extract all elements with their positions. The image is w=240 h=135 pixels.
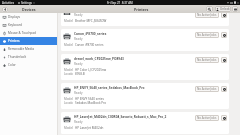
button[interactable]: Keyboard bbox=[0, 21, 57, 29]
staticText: Canon iP8700 series bbox=[75, 43, 104, 47]
button[interactable]: Back bbox=[2, 7, 8, 12]
staticText: No Active Jobs bbox=[197, 58, 217, 62]
staticText: Ready bbox=[74, 13, 83, 17]
button[interactable]: Color bbox=[0, 61, 57, 69]
button[interactable]: Printer settings bbox=[221, 86, 227, 92]
other: Battery bbox=[234, 1, 236, 4]
staticText: Model bbox=[64, 97, 73, 101]
button[interactable]: Removable Media bbox=[0, 45, 57, 53]
staticText: HP LaserJet M402dn bbox=[75, 126, 104, 130]
staticText: No Active Jobs bbox=[197, 33, 217, 37]
staticText: Activities bbox=[2, 1, 15, 5]
button[interactable]: Action bbox=[206, 6, 213, 12]
button[interactable]: No Active Jobs bbox=[195, 115, 219, 121]
staticText: Thunderbolt bbox=[8, 55, 27, 59]
button[interactable]: No Active Jobs bbox=[195, 32, 219, 38]
staticText: Settings bbox=[21, 1, 32, 5]
staticText: Devices bbox=[22, 7, 36, 12]
other: Search bbox=[208, 8, 211, 11]
staticText: Model bbox=[64, 126, 73, 130]
other: Network bbox=[227, 2, 229, 4]
staticText: Location bbox=[64, 72, 73, 76]
button[interactable]: Activities bbox=[2, 1, 15, 5]
button[interactable]: drexel_work_CP2025nw_PO8943 bbox=[61, 54, 229, 80]
staticText: Model bbox=[64, 43, 73, 47]
button[interactable]: Displays bbox=[0, 13, 57, 21]
button[interactable]: Printer settings bbox=[221, 115, 227, 121]
staticText: Model bbox=[64, 68, 73, 72]
staticText: Printers bbox=[134, 7, 149, 12]
button[interactable]: Canon_iP8700_series bbox=[61, 29, 229, 51]
button[interactable]: HP_LaserJet_M402dn_C00R04_Savario_Robust… bbox=[61, 112, 229, 134]
button[interactable]: Unlock bbox=[215, 6, 231, 12]
button[interactable]: Action bbox=[232, 6, 238, 12]
staticText: Ready bbox=[74, 62, 83, 66]
staticText: Printers bbox=[8, 39, 20, 43]
button[interactable]: No Active Jobs bbox=[195, 86, 219, 92]
button[interactable]: Mouse & Touchpad bbox=[0, 29, 57, 37]
staticText: Location bbox=[64, 101, 73, 105]
button[interactable]: Thunderbolt bbox=[0, 53, 57, 61]
staticText: Model bbox=[64, 19, 73, 23]
staticText: drexel_work_CP2025nw_PO8943 bbox=[74, 57, 124, 61]
button[interactable]: Ready bbox=[61, 13, 229, 26]
staticText: Removable Media bbox=[8, 47, 34, 51]
staticText: Brother MFC-J5845DW bbox=[75, 19, 107, 23]
staticText: Ready bbox=[74, 37, 83, 41]
staticText: No Active Jobs bbox=[197, 87, 217, 91]
staticText: Fri Sep 27 8:37 AM bbox=[107, 1, 133, 5]
button[interactable]: Printer settings bbox=[221, 57, 227, 63]
staticText: Canon_iP8700_series bbox=[74, 32, 107, 36]
staticText: HP Color LJ CP2025nw bbox=[75, 68, 107, 72]
button[interactable]: No Active Jobs bbox=[195, 13, 219, 18]
staticText: Unlock bbox=[220, 7, 230, 11]
staticText: Mouse & Touchpad bbox=[8, 31, 36, 35]
staticText: HP_LaserJet_M402dn_C00R04_Savario_Robust… bbox=[74, 115, 167, 119]
button[interactable]: Printers bbox=[0, 37, 57, 45]
staticText: Keyboard bbox=[8, 23, 22, 27]
button[interactable]: No Active Jobs bbox=[195, 57, 219, 63]
button[interactable]: HP_ENVY_5640_series_Sedakos_MacBook_Pro bbox=[61, 83, 229, 109]
staticText: Sedakos MacBook Pro bbox=[75, 101, 107, 105]
staticText: HP_ENVY_5640_series_Sedakos_MacBook_Pro bbox=[74, 86, 145, 90]
staticText: Displays bbox=[8, 15, 21, 19]
staticText: No Active Jobs bbox=[197, 13, 217, 17]
staticText: No Active Jobs bbox=[197, 116, 217, 120]
other: System menu bbox=[237, 2, 239, 4]
button[interactable]: Printer settings bbox=[221, 32, 227, 38]
button[interactable]: Printer settings bbox=[221, 13, 227, 18]
staticText: Ready bbox=[74, 91, 83, 95]
staticText: Color bbox=[8, 63, 16, 67]
staticText: 8958-B bbox=[75, 72, 85, 76]
button[interactable]: Settings bbox=[18, 1, 35, 5]
staticText: Ready bbox=[74, 120, 83, 124]
staticText: HP ENVY 5640 series bbox=[75, 97, 104, 101]
